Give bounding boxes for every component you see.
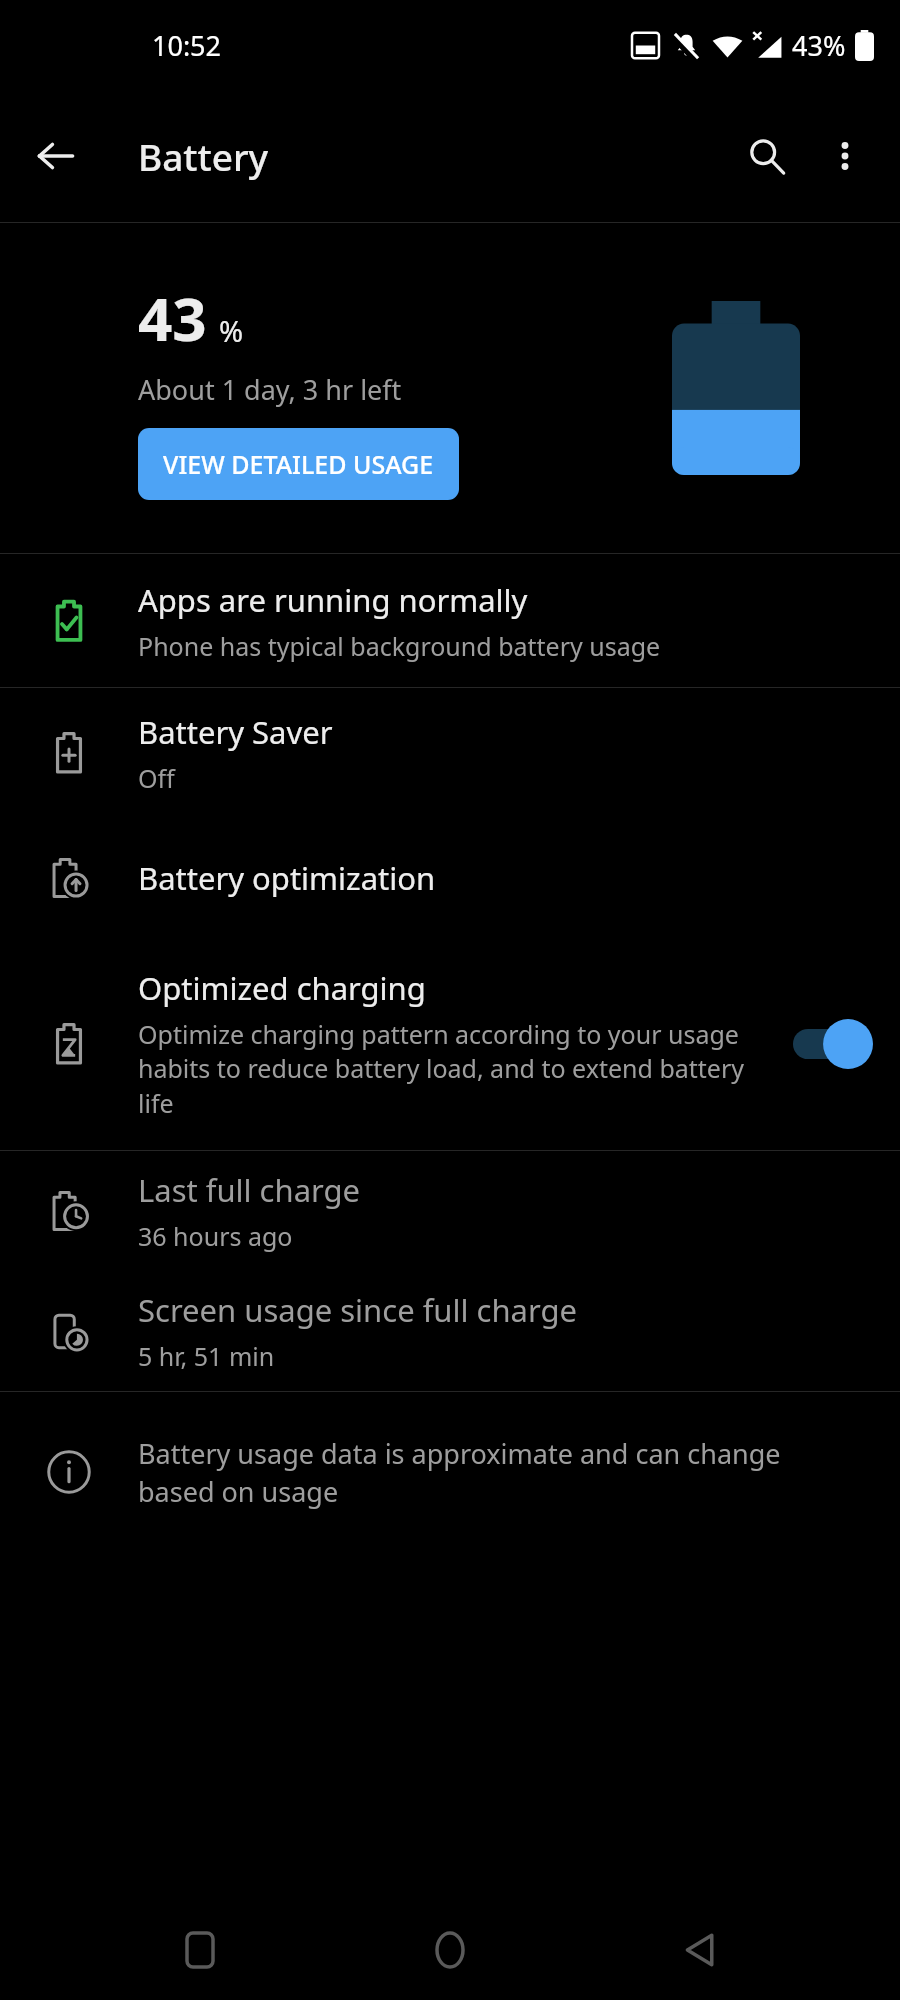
button[interactable]: Back bbox=[650, 1900, 750, 2000]
button[interactable]: Screen usage since full charge bbox=[0, 1271, 900, 1391]
staticText: Screen usage since full charge bbox=[138, 1289, 578, 1331]
button[interactable]: Apps are running normally bbox=[0, 554, 900, 687]
button[interactable]: Battery Saver bbox=[0, 688, 900, 818]
staticText: Off bbox=[138, 761, 175, 795]
staticText: 43 bbox=[138, 277, 207, 359]
button[interactable]: More options bbox=[806, 117, 884, 195]
staticText: Apps are running normally bbox=[138, 579, 528, 621]
staticText: % bbox=[219, 311, 244, 350]
button[interactable]: Optimized charging bbox=[0, 938, 900, 1150]
button[interactable]: Recent apps bbox=[150, 1900, 250, 2000]
staticText: Battery Saver bbox=[138, 711, 333, 753]
staticText: VIEW DETAILED USAGE bbox=[163, 447, 434, 481]
staticText: Battery bbox=[138, 131, 269, 181]
button[interactable]: Last full charge bbox=[0, 1151, 900, 1271]
staticText: Last full charge bbox=[138, 1169, 361, 1211]
staticText: Optimize charging pattern according to y… bbox=[138, 1017, 752, 1121]
staticText: About 1 day, 3 hr left bbox=[138, 371, 402, 408]
button[interactable]: Optimized charging toggle bbox=[772, 938, 900, 1150]
button[interactable]: Home bbox=[400, 1900, 500, 2000]
staticText: 5 hr, 51 min bbox=[138, 1339, 275, 1373]
button[interactable]: Battery optimization bbox=[0, 818, 900, 938]
staticText: Battery optimization bbox=[138, 857, 436, 899]
staticText: 43% bbox=[792, 27, 846, 64]
staticText: 36 hours ago bbox=[138, 1219, 293, 1253]
staticText: Optimized charging bbox=[138, 967, 426, 1009]
button[interactable]: Search bbox=[728, 117, 806, 195]
button[interactable]: VIEW DETAILED USAGE bbox=[138, 428, 459, 500]
button[interactable]: Back bbox=[20, 120, 92, 192]
staticText: Battery usage data is approximate and ca… bbox=[138, 1435, 830, 1510]
staticText: 10:52 bbox=[152, 27, 222, 64]
staticText: Phone has typical background battery usa… bbox=[138, 629, 661, 663]
